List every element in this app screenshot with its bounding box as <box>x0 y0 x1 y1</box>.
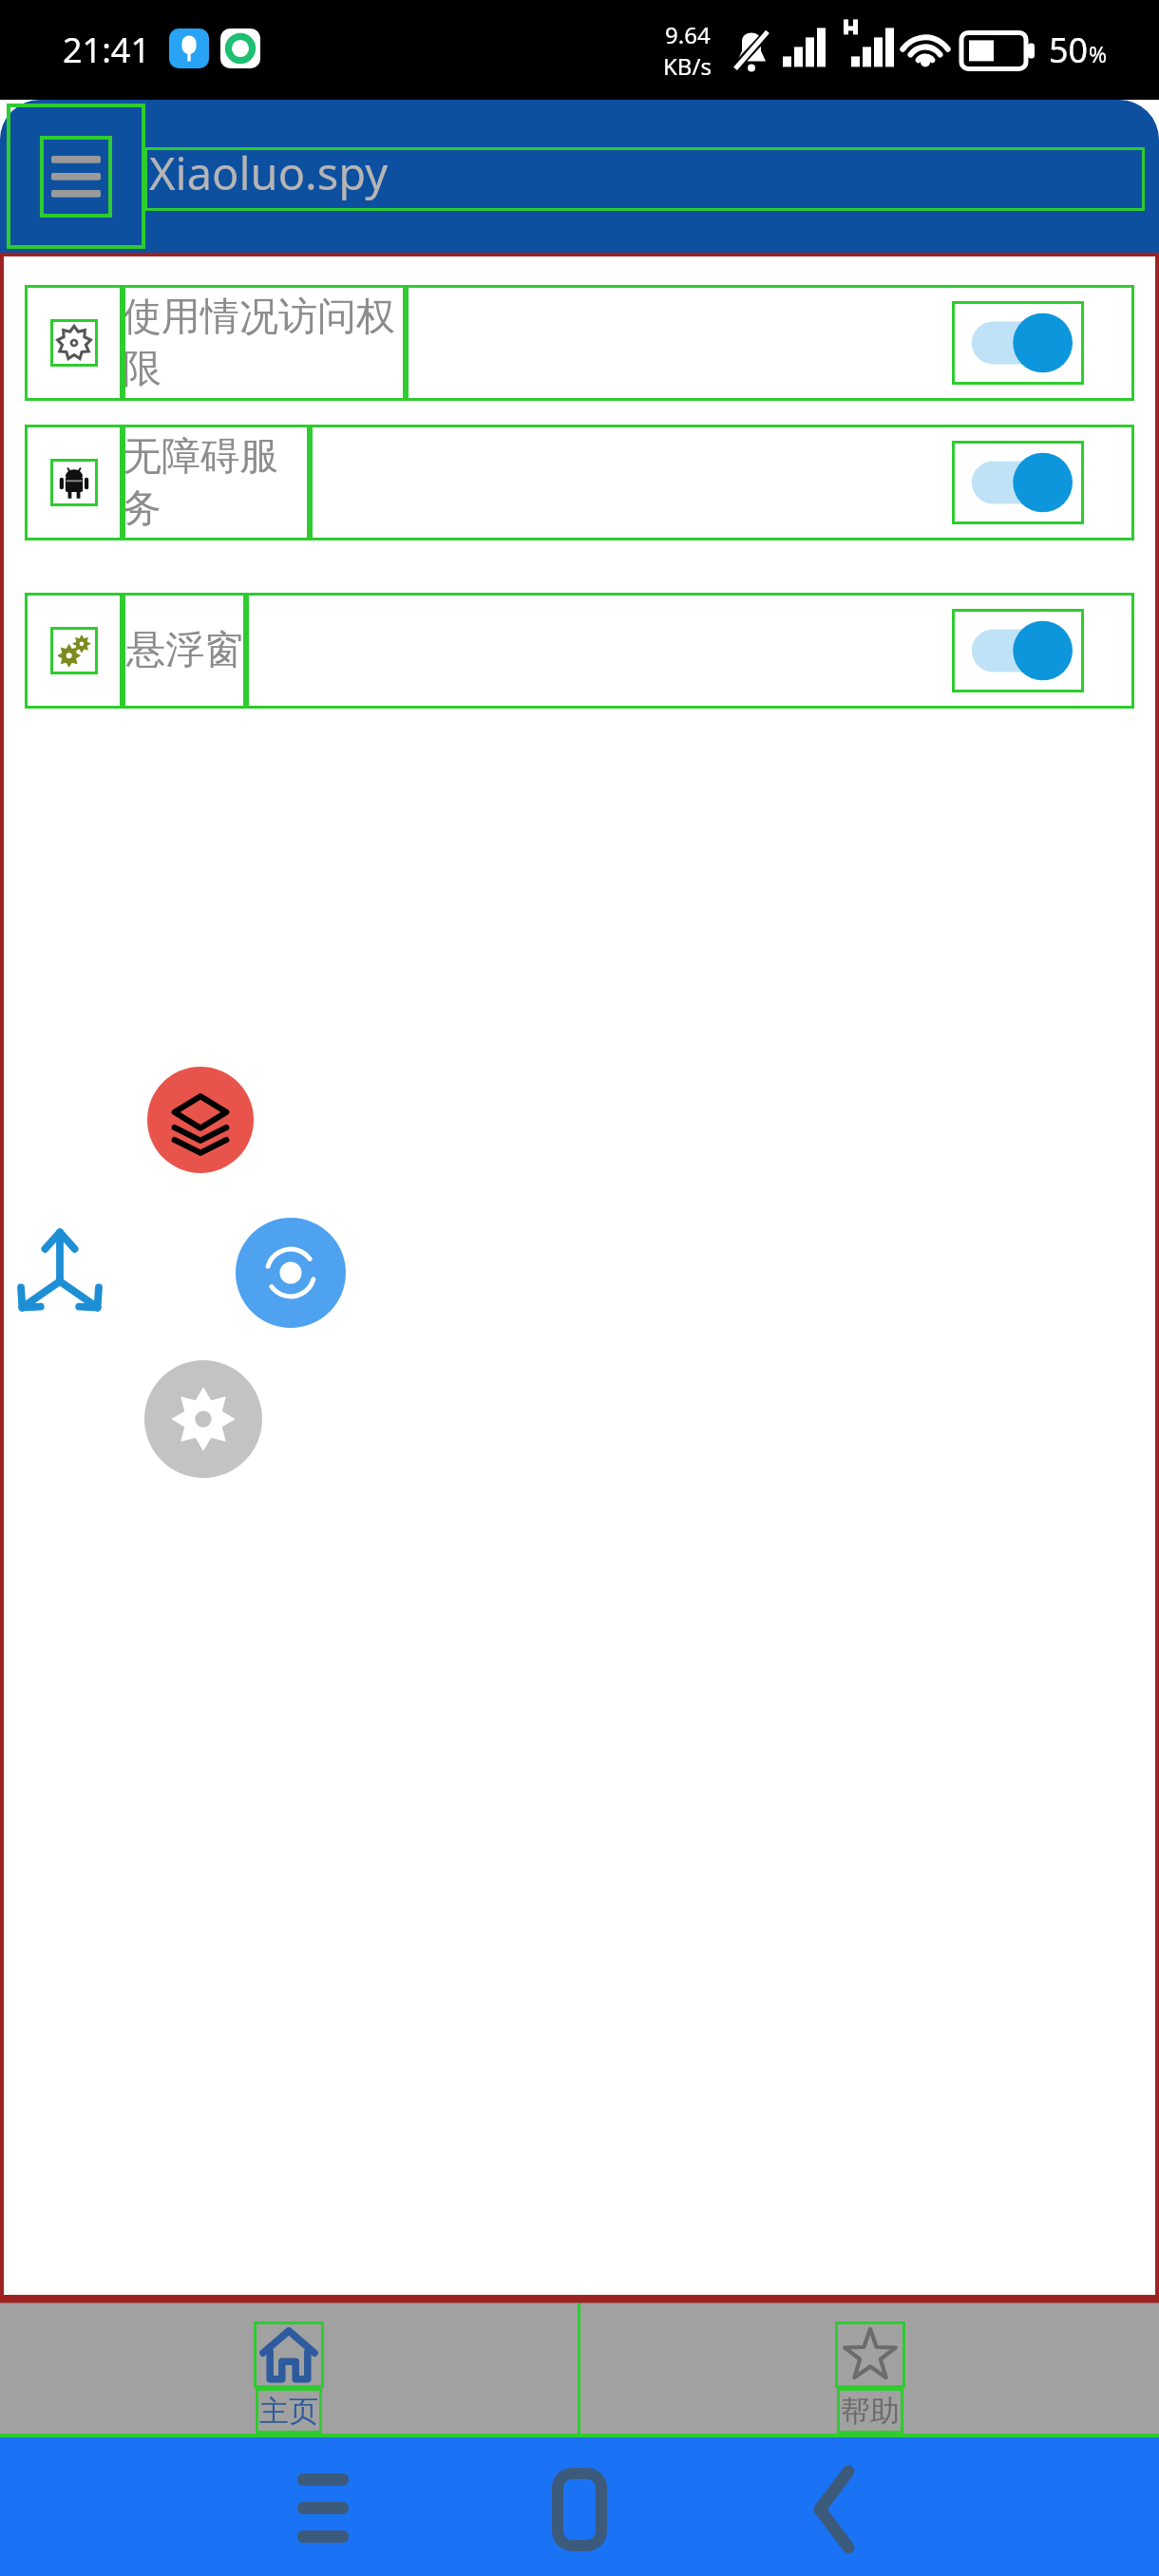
staticText: 帮助 <box>841 2393 900 2430</box>
button[interactable]: 主页 <box>0 2299 578 2437</box>
button[interactable]: Move <box>16 1226 104 1314</box>
staticText: Xiaoluo.spy <box>149 142 389 203</box>
button[interactable]: 无障碍服务 <box>25 425 1134 540</box>
staticText: 无障碍服务 <box>123 432 310 533</box>
staticText: 21:41 <box>63 27 151 73</box>
staticText: 使用情况访问权限 <box>123 293 406 393</box>
button[interactable]: Back <box>777 2437 891 2576</box>
button[interactable]: Toggle 悬浮窗 <box>952 609 1084 692</box>
button[interactable]: Open navigation menu <box>7 104 145 249</box>
button[interactable]: 悬浮窗 <box>25 593 1134 709</box>
button[interactable]: Recents <box>266 2437 380 2576</box>
staticText: 9.64 <box>665 19 711 50</box>
button[interactable]: 使用情况访问权限 <box>25 285 1134 401</box>
staticText: 主页 <box>259 2393 318 2430</box>
button[interactable]: Home <box>522 2437 636 2576</box>
staticText: 50 <box>1049 27 1089 73</box>
button[interactable]: 帮助 <box>580 2299 1159 2437</box>
button[interactable]: Layers <box>147 1067 254 1173</box>
button[interactable]: Toggle 无障碍服务 <box>952 441 1084 524</box>
staticText: % <box>1089 39 1108 68</box>
button[interactable]: Toggle 使用情况访问权限 <box>952 301 1084 385</box>
button[interactable]: Settings <box>144 1360 262 1478</box>
button[interactable]: Record <box>236 1218 346 1328</box>
staticText: 悬浮窗 <box>126 626 243 675</box>
staticText: KB/s <box>663 50 712 82</box>
